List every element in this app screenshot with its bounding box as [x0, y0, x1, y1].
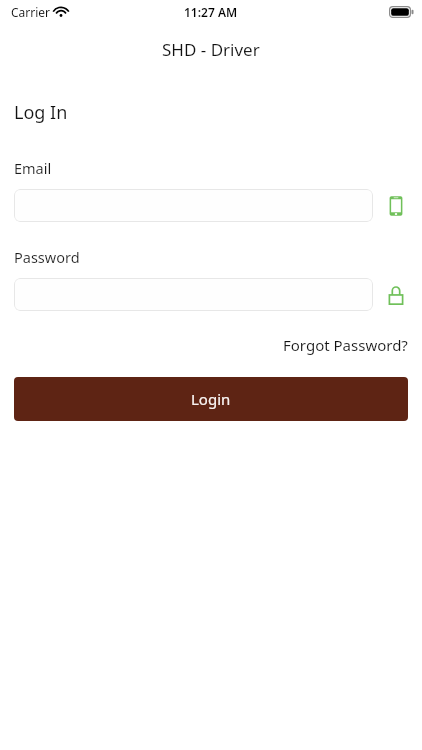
staticText: 11:27 AM [184, 4, 238, 20]
button[interactable]: Forgot Password? [283, 331, 422, 359]
staticText: Forgot Password? [283, 335, 408, 355]
staticText: SHD - Driver [162, 38, 260, 61]
staticText: Carrier [11, 4, 51, 20]
button[interactable] [14, 189, 373, 222]
staticText: Email [14, 158, 52, 178]
button[interactable] [14, 278, 373, 311]
button[interactable]: Show password [384, 283, 408, 307]
staticText: Password [14, 247, 80, 267]
button[interactable]: Phone [384, 194, 408, 218]
staticText: Login [191, 389, 231, 409]
button[interactable]: Login [14, 377, 408, 421]
staticText: Log In [14, 100, 68, 125]
